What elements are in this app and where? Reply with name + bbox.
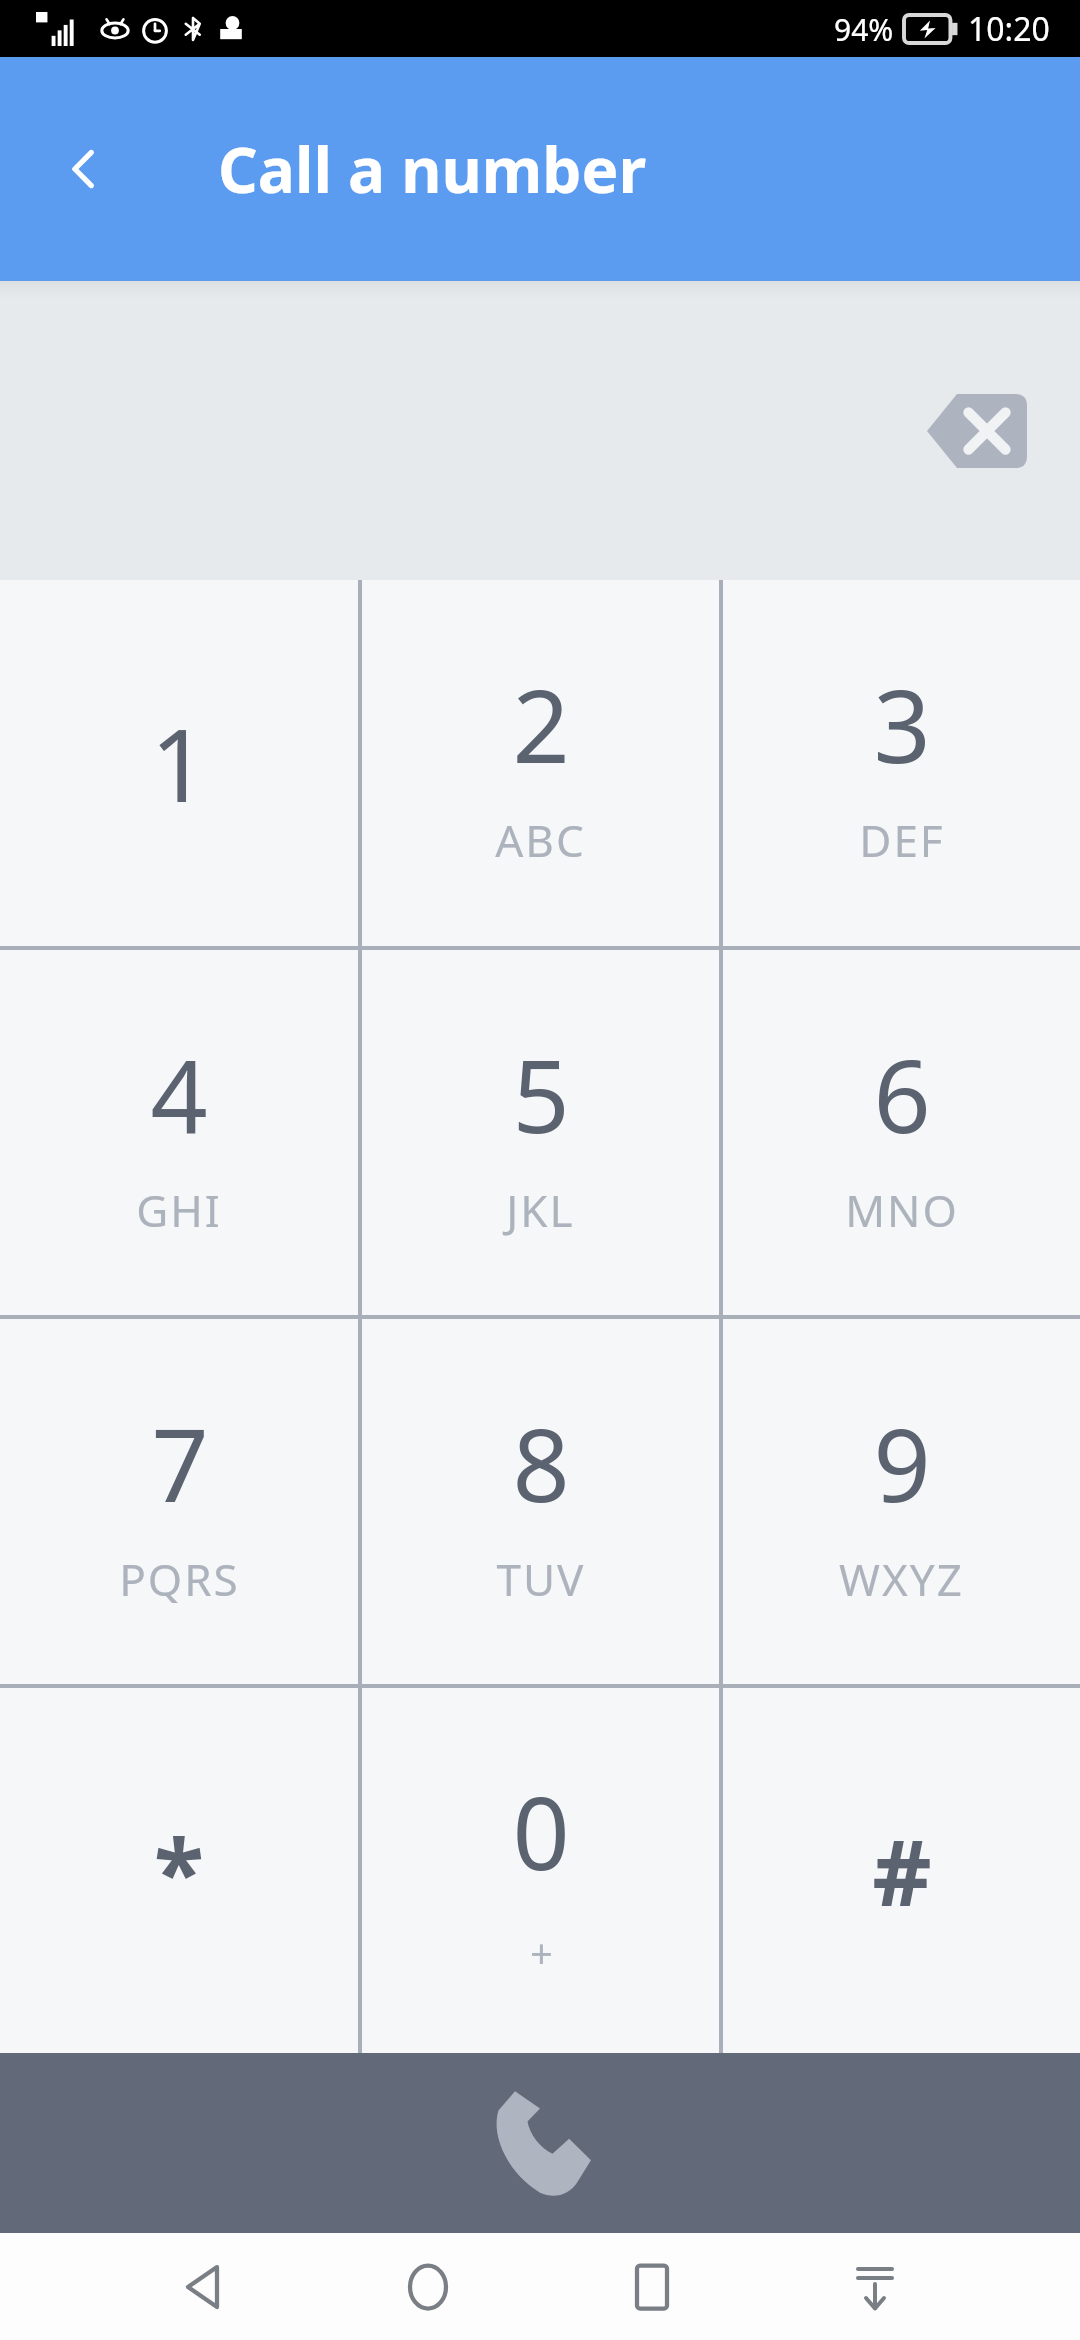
staticText: # xyxy=(872,1808,932,1933)
staticText: PQRS xyxy=(119,1549,240,1609)
button[interactable]: Home xyxy=(373,2233,483,2340)
button[interactable]: 1 xyxy=(0,580,358,946)
staticText: WXYZ xyxy=(839,1549,964,1609)
button[interactable]: 6 xyxy=(723,950,1080,1315)
staticText: 94% xyxy=(834,9,894,50)
button[interactable]: Recents xyxy=(597,2233,707,2340)
staticText: MNO xyxy=(845,1180,959,1240)
button[interactable]: # xyxy=(723,1688,1080,2053)
button[interactable]: 7 xyxy=(0,1319,358,1684)
button[interactable]: Back xyxy=(30,115,138,223)
button[interactable]: Delete xyxy=(912,376,1042,486)
button[interactable]: 5 xyxy=(362,950,719,1315)
button[interactable]: * xyxy=(0,1688,358,2053)
staticText: 9 xyxy=(873,1395,931,1531)
button[interactable]: 3 xyxy=(723,580,1080,946)
button[interactable]: 4 xyxy=(0,950,358,1315)
staticText: JKL xyxy=(506,1180,575,1240)
staticText: Call a number xyxy=(218,127,647,211)
button[interactable]: Back xyxy=(150,2233,260,2340)
button[interactable]: 0 xyxy=(362,1688,719,2053)
button[interactable]: 9 xyxy=(723,1319,1080,1684)
staticText: 1 xyxy=(150,695,208,831)
button[interactable]: 2 xyxy=(362,580,719,946)
staticText: 0 xyxy=(512,1763,570,1899)
staticText: 10:20 xyxy=(968,7,1050,51)
button[interactable]: 8 xyxy=(362,1319,719,1684)
staticText: 3 xyxy=(873,656,931,792)
staticText: * xyxy=(154,1808,204,1933)
staticText: TUV xyxy=(496,1549,586,1609)
staticText: 2 xyxy=(512,656,570,792)
staticText: 6 xyxy=(873,1026,931,1162)
staticText: 5 xyxy=(512,1026,570,1162)
staticText: 7 xyxy=(151,1395,209,1531)
staticText: ABC xyxy=(495,810,586,870)
staticText: 4 xyxy=(150,1026,208,1162)
button[interactable]: Hide keyboard xyxy=(820,2233,930,2340)
staticText: 8 xyxy=(512,1395,570,1531)
staticText: + xyxy=(530,1925,553,1979)
staticText: DEF xyxy=(859,810,945,870)
button[interactable]: Call xyxy=(0,2053,1080,2233)
staticText: GHI xyxy=(136,1180,222,1240)
